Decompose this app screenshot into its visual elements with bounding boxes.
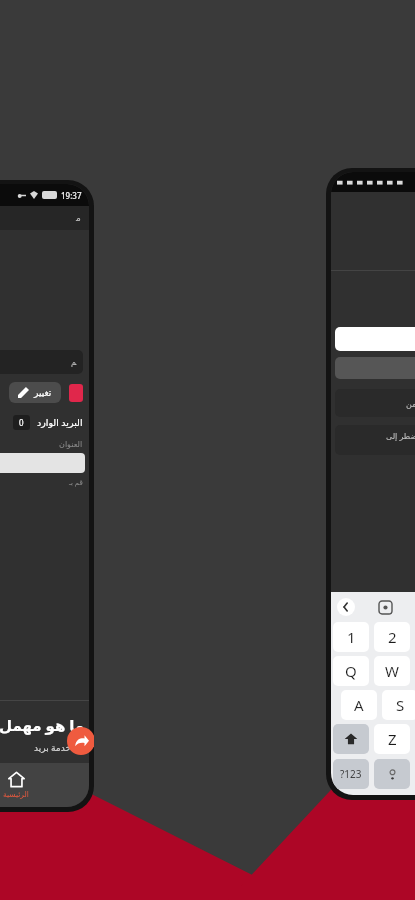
button[interactable]: W: [374, 656, 410, 686]
button[interactable]: 2: [374, 622, 410, 652]
button[interactable]: 0: [0, 415, 83, 430]
staticText: ?123: [340, 767, 362, 781]
button[interactable]: [335, 327, 415, 351]
button[interactable]: Back: [337, 598, 355, 616]
staticText: البريد الوارد: [37, 416, 83, 429]
button[interactable]: Z: [374, 724, 410, 754]
button[interactable]: ﻣ: [0, 206, 89, 230]
staticText: S: [396, 695, 405, 715]
button[interactable]: ﻢ: [0, 350, 83, 374]
button[interactable]: وضوع لكي لا تضطر إلى: [335, 425, 415, 455]
staticText: 2: [388, 627, 397, 647]
staticText: 19:37: [61, 190, 82, 201]
staticText: العنوان: [59, 440, 83, 449]
button[interactable]: Q: [333, 656, 369, 686]
button[interactable]: [0, 453, 85, 473]
staticText: بعد عدة معينة من: [406, 398, 415, 409]
staticText: ول خدمة بريد: [34, 741, 85, 753]
staticText: ما هو مهمل: [0, 715, 85, 735]
staticText: ﻣ: [76, 213, 81, 223]
staticText: 0: [19, 417, 24, 428]
staticText: 1: [347, 627, 356, 647]
button[interactable]: S: [382, 690, 415, 720]
staticText: الرئيسية: [3, 790, 29, 799]
button[interactable]: 1: [333, 622, 369, 652]
button[interactable]: A: [341, 690, 377, 720]
staticText: وضوع لكي لا تضطر إلى: [386, 430, 415, 441]
button[interactable]: تغيير: [9, 382, 61, 403]
staticText: Q: [345, 661, 357, 681]
button[interactable]: Sticker: [377, 599, 393, 615]
staticText: W: [385, 661, 399, 681]
staticText: A: [354, 695, 364, 715]
staticText: ﻢ: [71, 358, 77, 367]
staticText: قم بـ: [69, 478, 83, 488]
button[interactable]: Shift: [333, 724, 369, 754]
button[interactable]: Comma: [374, 759, 410, 789]
button[interactable]: بعد عدة معينة من: [335, 389, 415, 417]
staticText: تغيير: [34, 388, 52, 398]
button[interactable]: الرئيسية: [0, 763, 89, 807]
button[interactable]: Share: [67, 727, 94, 755]
staticText: Z: [388, 729, 397, 749]
button[interactable]: ?123: [333, 759, 369, 789]
